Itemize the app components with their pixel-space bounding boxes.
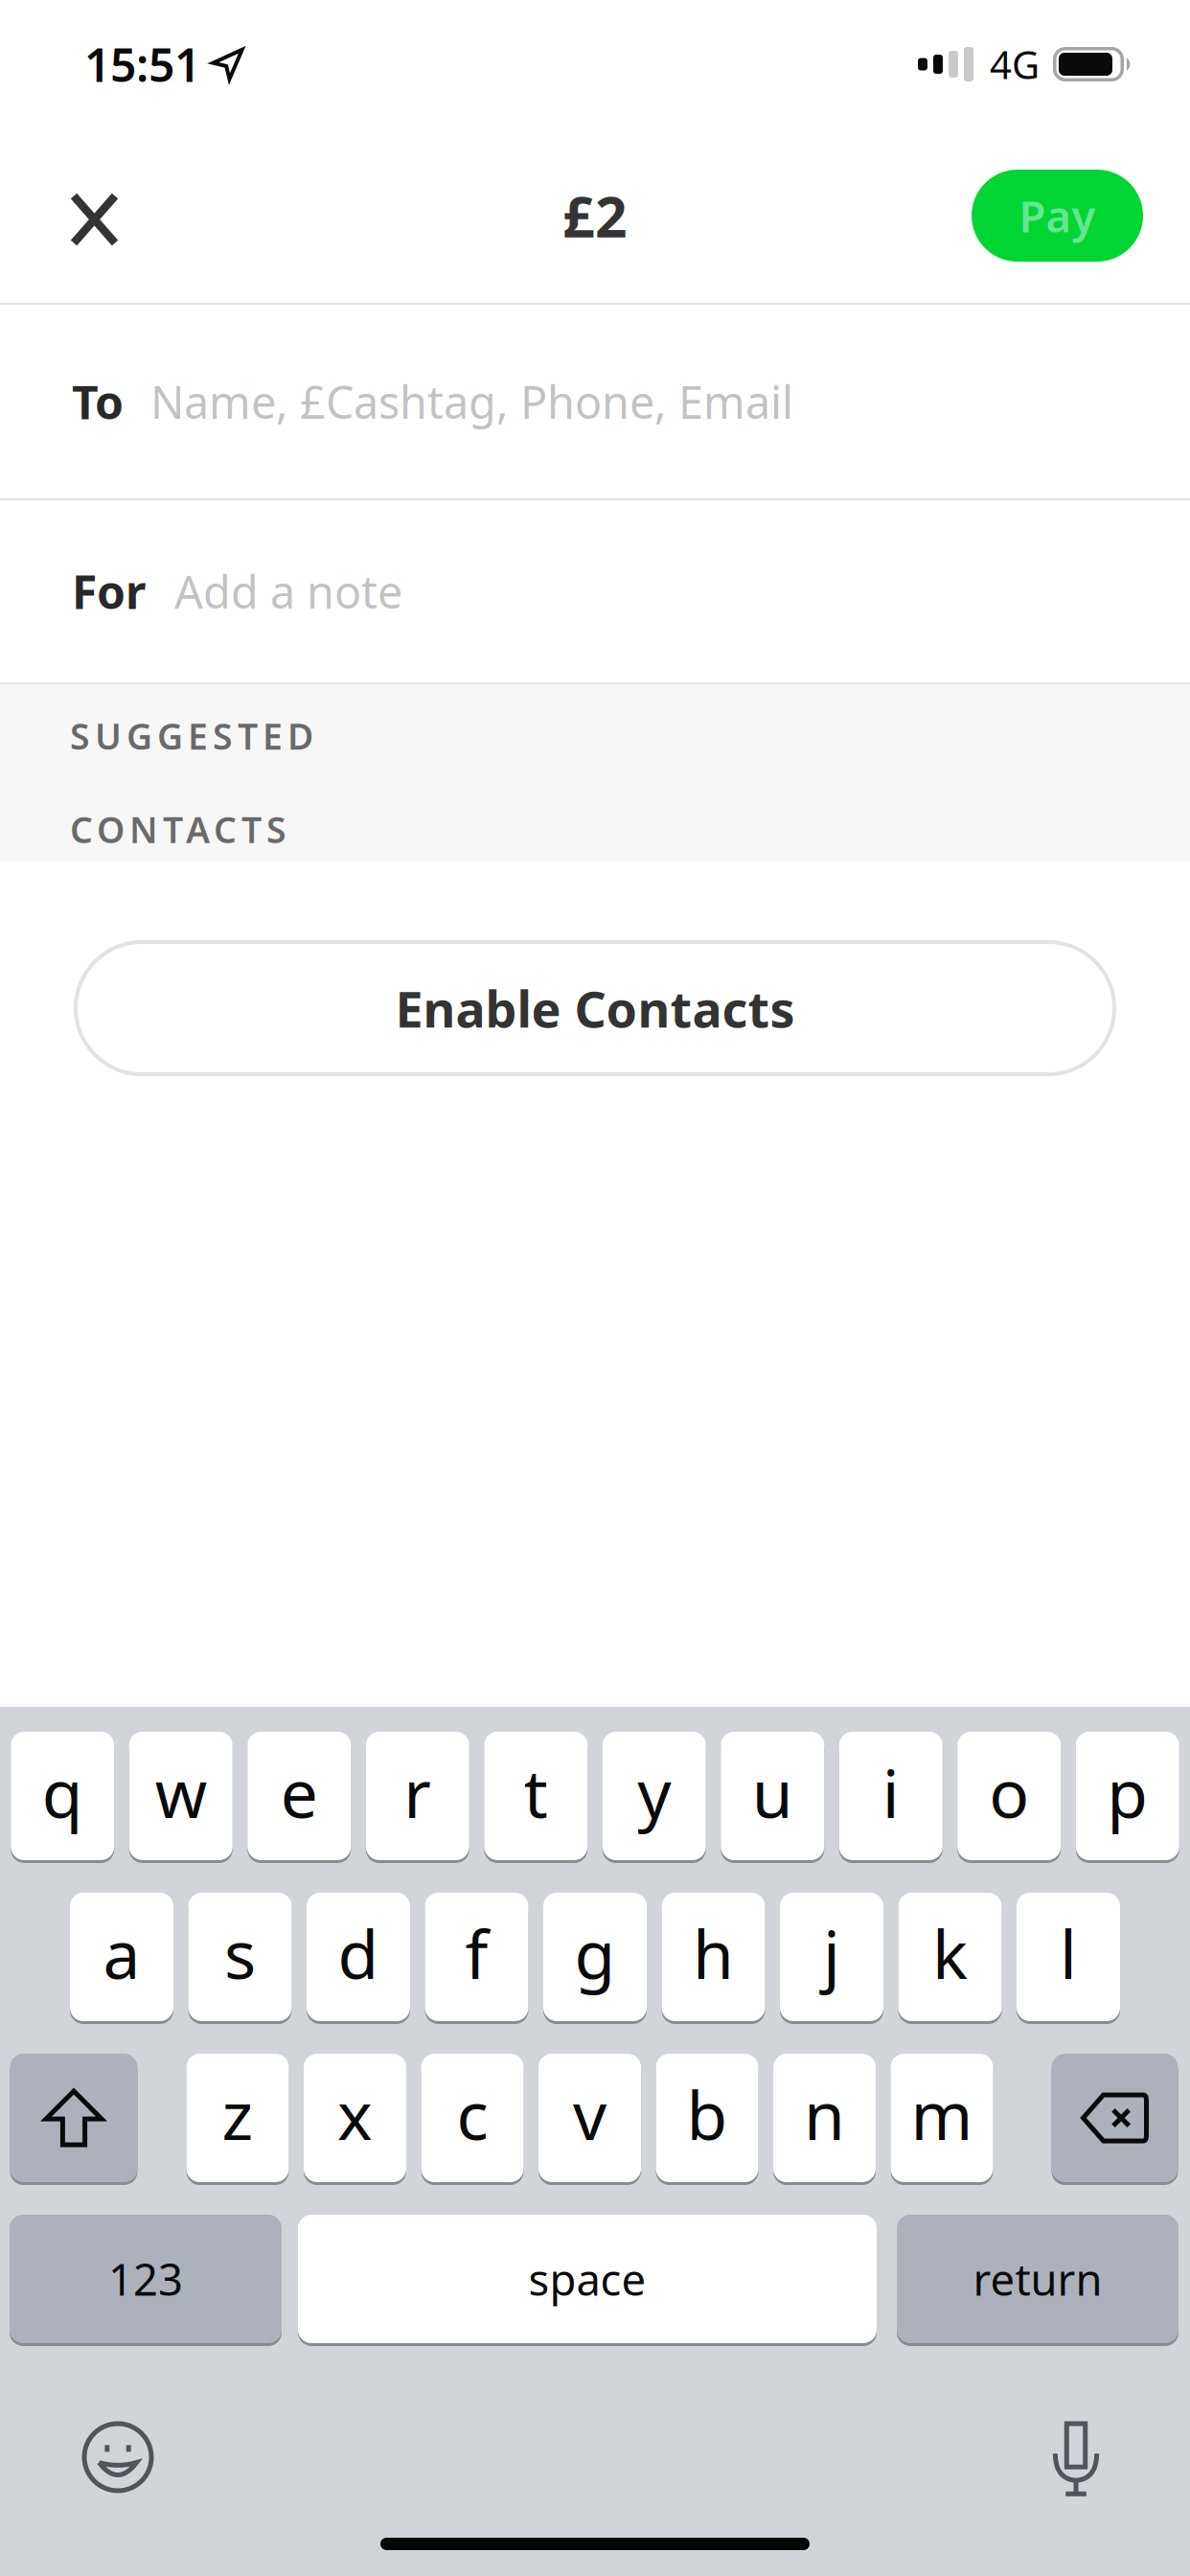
button[interactable]: z xyxy=(186,2054,289,2182)
staticText: return xyxy=(973,2250,1102,2308)
button[interactable]: To xyxy=(0,305,1190,498)
button[interactable]: s xyxy=(188,1893,292,2021)
button[interactable]: Dictation xyxy=(1050,2424,1102,2498)
button[interactable]: c xyxy=(421,2054,524,2182)
button[interactable]: Emoji xyxy=(84,2424,151,2491)
staticText: n xyxy=(804,2070,845,2158)
staticText: For xyxy=(72,561,146,622)
staticText: v xyxy=(573,2070,606,2158)
staticText: 15:51 xyxy=(84,34,200,95)
button[interactable]: v xyxy=(538,2054,641,2182)
button[interactable]: a xyxy=(70,1893,173,2021)
staticText: g xyxy=(574,1909,616,1997)
button[interactable]: t xyxy=(484,1732,588,1860)
button[interactable]: For xyxy=(0,500,1190,682)
staticText: q xyxy=(42,1748,83,1836)
staticText: d xyxy=(338,1909,379,1997)
button[interactable]: n xyxy=(773,2054,876,2182)
button[interactable]: x xyxy=(304,2054,406,2182)
button[interactable]: 123 xyxy=(10,2215,282,2343)
button[interactable]: Delete xyxy=(1052,2054,1178,2182)
button[interactable]: p xyxy=(1076,1732,1179,1860)
button[interactable]: o xyxy=(957,1732,1061,1860)
staticText: x xyxy=(337,2070,373,2158)
staticText: a xyxy=(103,1909,140,1997)
staticText: l xyxy=(1060,1909,1077,1997)
button[interactable]: e xyxy=(247,1732,351,1860)
staticText: £2 xyxy=(562,178,628,253)
button[interactable]: u xyxy=(721,1732,824,1860)
staticText: SUGGESTED xyxy=(70,712,313,760)
staticText: z xyxy=(222,2070,253,2158)
staticText: e xyxy=(281,1748,318,1836)
staticText: s xyxy=(224,1909,256,1997)
button[interactable]: Close xyxy=(0,192,115,239)
button[interactable]: f xyxy=(425,1893,528,2021)
staticText: 123 xyxy=(108,2250,183,2308)
staticText: t xyxy=(524,1748,548,1836)
staticText: r xyxy=(404,1748,431,1836)
staticText: b xyxy=(687,2070,728,2158)
button[interactable]: b xyxy=(656,2054,758,2182)
staticText: y xyxy=(637,1748,671,1836)
button[interactable]: return xyxy=(897,2215,1179,2343)
staticText: h xyxy=(693,1909,734,1997)
button[interactable]: space xyxy=(298,2215,877,2343)
staticText: w xyxy=(155,1748,207,1836)
staticText: f xyxy=(465,1909,488,1997)
button[interactable]: d xyxy=(307,1893,410,2021)
staticText: 4G xyxy=(990,39,1040,90)
button[interactable]: k xyxy=(898,1893,1002,2021)
staticText: Enable Contacts xyxy=(395,975,795,1041)
button[interactable]: Pay xyxy=(972,170,1143,262)
button[interactable]: j xyxy=(780,1893,883,2021)
staticText: To xyxy=(72,371,124,432)
button[interactable]: Shift xyxy=(10,2054,137,2182)
button[interactable]: g xyxy=(543,1893,647,2021)
staticText: CONTACTS xyxy=(70,806,286,853)
staticText: u xyxy=(752,1748,793,1836)
staticText: Add a note xyxy=(174,562,402,621)
button[interactable]: l xyxy=(1017,1893,1120,2021)
staticText: p xyxy=(1107,1748,1148,1836)
button[interactable]: i xyxy=(839,1732,943,1860)
staticText: c xyxy=(457,2070,488,2158)
button[interactable]: y xyxy=(602,1732,706,1860)
staticText: space xyxy=(528,2250,646,2308)
button[interactable]: q xyxy=(11,1732,114,1860)
button[interactable]: h xyxy=(662,1893,765,2021)
staticText: i xyxy=(882,1748,899,1836)
button[interactable]: w xyxy=(129,1732,233,1860)
staticText: k xyxy=(932,1909,968,1997)
staticText: j xyxy=(823,1909,840,1997)
button[interactable]: Enable Contacts xyxy=(74,940,1116,1076)
staticText: Pay xyxy=(1019,187,1096,244)
staticText: Name, £Cashtag, Phone, Email xyxy=(150,372,793,431)
button[interactable]: m xyxy=(891,2054,993,2182)
button[interactable]: r xyxy=(366,1732,469,1860)
staticText: o xyxy=(989,1748,1029,1836)
staticText: m xyxy=(911,2070,973,2158)
